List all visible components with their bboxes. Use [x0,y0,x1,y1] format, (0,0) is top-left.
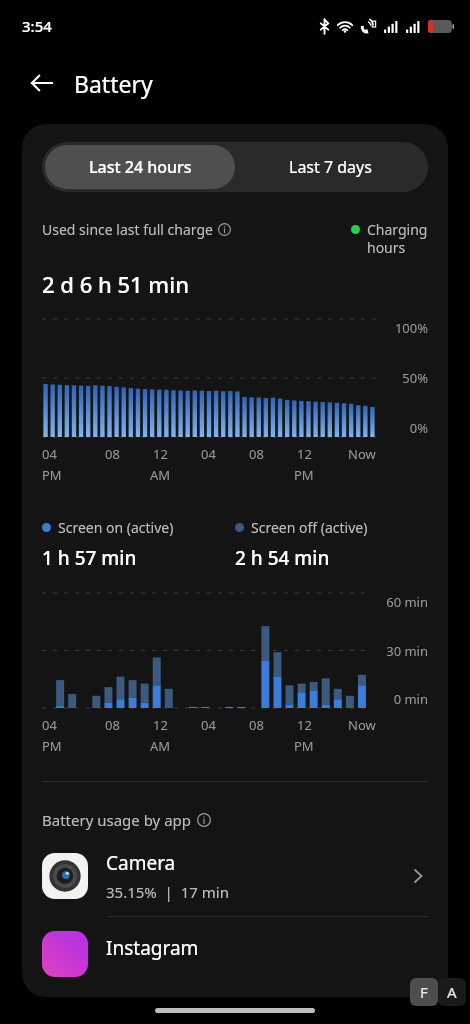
staticText: 2 d 6 h 51 min [42,269,189,299]
staticText: AM [150,737,171,755]
staticText: 12 [297,716,312,734]
button[interactable]: Camera [42,850,428,902]
staticText: 100% [394,319,428,337]
staticText: PM [42,466,62,484]
staticText: 1 h 57 min [42,545,137,571]
staticText: Battery usage by app [42,810,191,830]
staticText: 0% [409,419,428,437]
staticText: 50% [402,369,428,387]
staticText: 2 h 54 min [235,545,330,571]
staticText: AM [150,466,171,484]
staticText: 08 [105,716,120,734]
button[interactable]: Back [18,59,66,107]
staticText: Last 7 days [289,156,372,178]
staticText: Now [348,716,376,734]
staticText: 08 [249,716,264,734]
staticText: 0 min [393,690,428,708]
staticText: 04 [201,716,216,734]
staticText: 04 [42,445,57,463]
staticText: 12 [153,445,168,463]
staticText: Instagram [106,935,199,961]
staticText: 30 min [386,642,428,660]
staticText: 08 [105,445,120,463]
staticText: Now [348,445,376,463]
staticText: PM [42,737,62,755]
staticText: Used since last full charge [42,220,213,239]
staticText: Last 24 hours [89,156,192,178]
staticText: 35.15% | 17 min [106,882,229,902]
staticText: Charging hours [367,220,428,257]
staticText: Battery [74,68,153,99]
staticText: A [447,982,457,1002]
staticText: 12 [297,445,312,463]
staticText: Camera [106,850,176,876]
staticText: 04 [42,716,57,734]
button[interactable]: Last 24 hours [45,145,235,189]
button[interactable]: Instagram [42,931,428,977]
staticText: 04 [201,445,216,463]
staticText: PM [294,466,314,484]
button[interactable]: Last 7 days [235,145,425,189]
staticText: 60 min [386,593,428,611]
button[interactable]: F [410,978,438,1006]
staticText: Screen on (active) [58,518,174,537]
staticText: F [420,982,428,1002]
staticText: 12 [153,716,168,734]
staticText: PM [294,737,314,755]
staticText: 08 [249,445,264,463]
staticText: 3:54 [22,16,52,36]
button[interactable]: A [438,978,466,1006]
staticText: Screen off (active) [251,518,368,537]
